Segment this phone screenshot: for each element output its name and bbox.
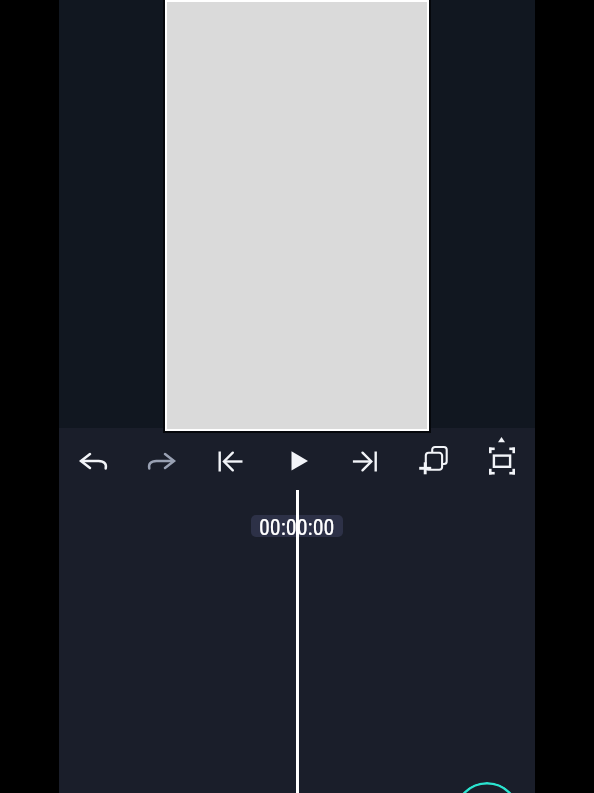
button[interactable]: Aspect ratio [467,431,535,492]
button[interactable]: Undo [59,431,127,492]
button[interactable]: Skip to end [331,431,399,492]
button[interactable]: Play [263,431,331,492]
button[interactable]: 00:00:00 [251,515,343,537]
button[interactable]: Add layer [399,431,467,492]
button[interactable]: Redo [127,431,195,492]
button[interactable]: Record [454,782,520,793]
button[interactable]: Skip to start [195,431,263,492]
staticText: 00:00:00 [259,515,335,537]
